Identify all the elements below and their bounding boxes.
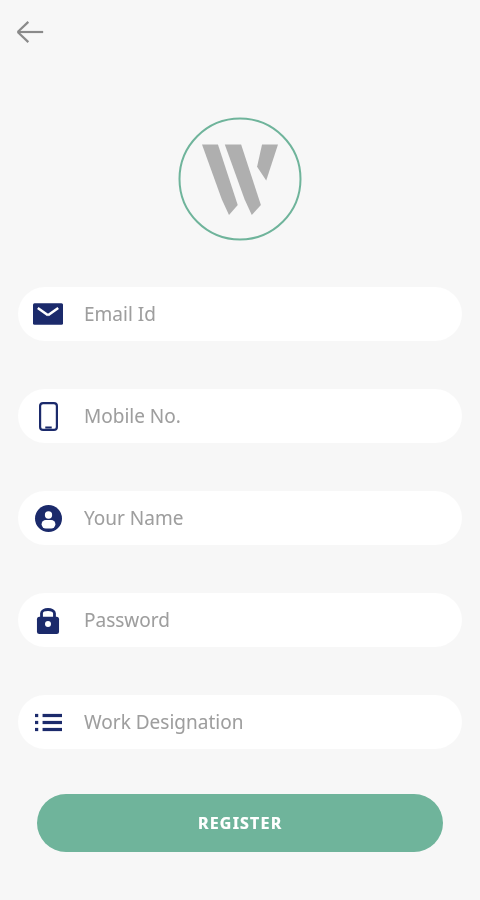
button[interactable]: Email Id <box>18 287 462 341</box>
staticText: Email Id <box>84 301 156 327</box>
button[interactable]: REGISTER <box>37 794 443 852</box>
staticText: Work Designation <box>84 709 244 735</box>
button[interactable]: Password <box>18 593 462 647</box>
staticText: Password <box>84 607 170 633</box>
button[interactable]: Work Designation <box>18 695 462 749</box>
button[interactable]: Back <box>8 10 52 54</box>
staticText: REGISTER <box>198 812 283 834</box>
staticText: Your Name <box>84 505 184 531</box>
staticText: Mobile No. <box>84 403 181 429</box>
button[interactable]: Your Name <box>18 491 462 545</box>
button[interactable]: Mobile No. <box>18 389 462 443</box>
